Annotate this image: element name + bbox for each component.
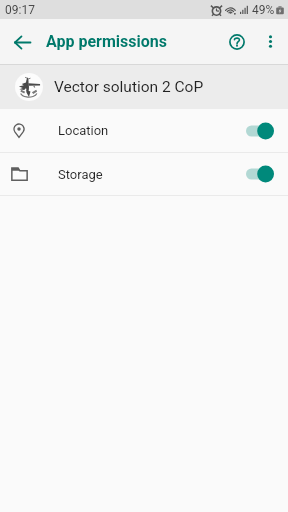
button[interactable]: More options <box>253 19 288 64</box>
button[interactable]: Toggle permission <box>246 122 274 140</box>
button[interactable]: Location <box>0 109 288 152</box>
button[interactable]: Vector solution 2 CoP <box>0 65 288 109</box>
staticText: Location <box>58 123 109 138</box>
staticText: 09:17 <box>5 3 35 17</box>
button[interactable]: Help <box>221 19 253 64</box>
staticText: App permissions <box>46 32 167 51</box>
button[interactable]: Toggle permission <box>246 165 274 183</box>
button[interactable]: Storage <box>0 153 288 195</box>
button[interactable]: Navigate up <box>0 20 44 64</box>
staticText: Vector solution 2 CoP <box>54 78 204 96</box>
staticText: Storage <box>58 167 103 182</box>
staticText: 49% <box>252 3 275 17</box>
